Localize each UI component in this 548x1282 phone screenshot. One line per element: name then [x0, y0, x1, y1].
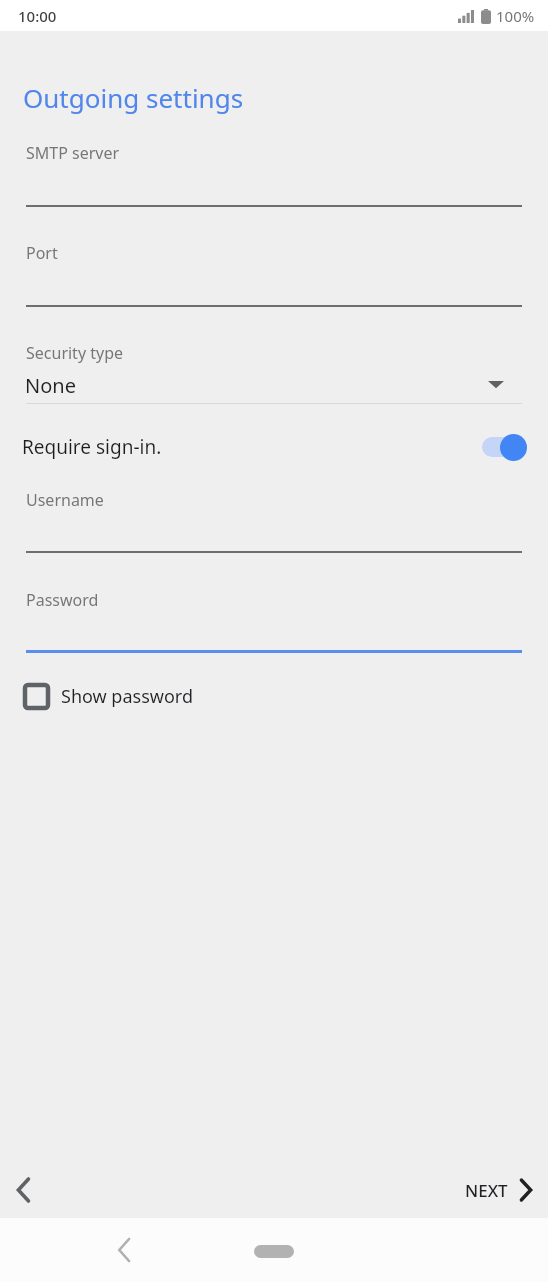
button[interactable]: SMTP server [0, 120, 548, 215]
staticText: Outgoing settings [23, 80, 244, 115]
button[interactable]: Back [92, 1218, 156, 1282]
button[interactable]: Home [254, 1245, 294, 1258]
button[interactable]: NEXT [451, 1166, 548, 1214]
button[interactable]: Security type [0, 320, 548, 404]
button[interactable]: Password [0, 568, 548, 660]
staticText: Require sign-in. [22, 434, 162, 460]
staticText: Show password [61, 684, 193, 709]
button[interactable]: Require sign-in. [0, 420, 548, 474]
staticText: Password [26, 589, 99, 611]
button[interactable]: Port [0, 220, 548, 315]
staticText: Username [26, 489, 104, 511]
staticText: 10:00 [18, 6, 57, 26]
staticText: Security type [26, 342, 124, 364]
button[interactable]: Back [0, 1166, 48, 1214]
staticText: 100% [496, 6, 535, 26]
staticText: Port [26, 242, 58, 264]
staticText: NEXT [465, 1179, 508, 1202]
staticText: SMTP server [26, 142, 120, 164]
staticText: None [25, 372, 76, 399]
button[interactable]: Username [0, 468, 548, 560]
button[interactable]: Show password [0, 672, 548, 720]
